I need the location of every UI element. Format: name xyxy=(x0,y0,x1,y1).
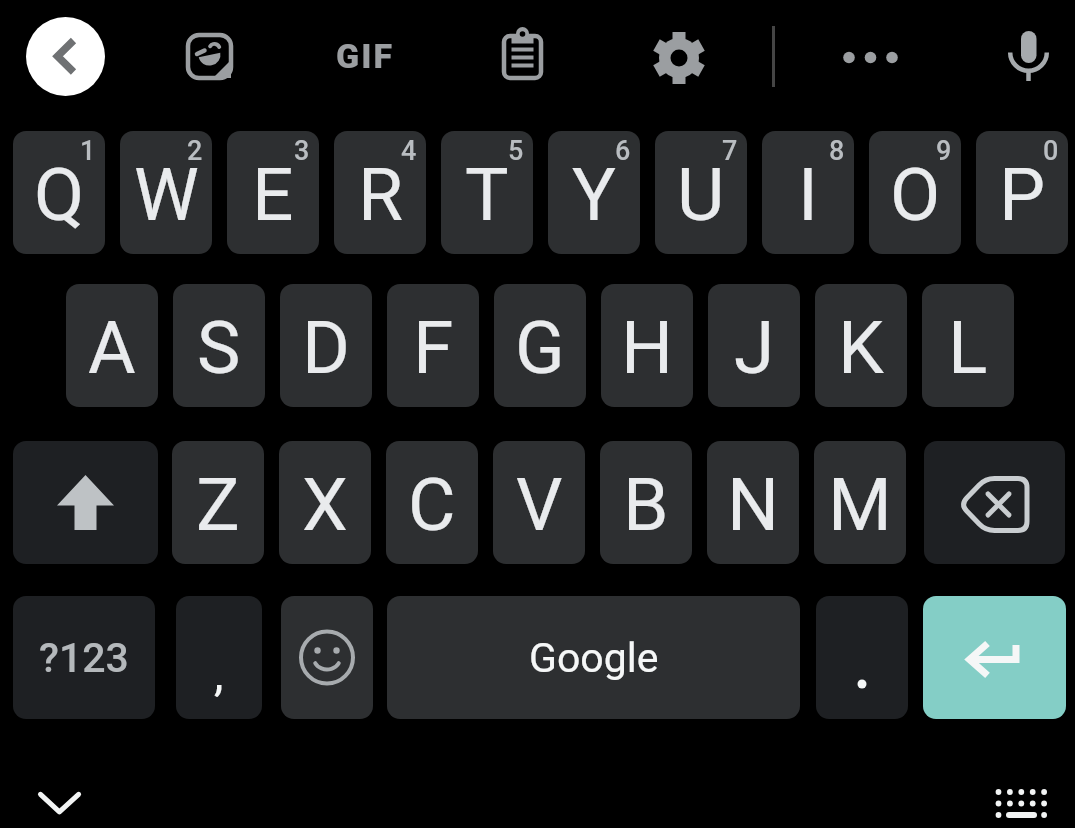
button[interactable] xyxy=(653,32,705,84)
button[interactable]: N xyxy=(707,441,799,564)
button[interactable]: L xyxy=(922,284,1014,407)
staticText: H xyxy=(621,305,674,391)
button[interactable]: , xyxy=(176,596,262,719)
staticText: 9 xyxy=(936,135,952,167)
button[interactable]: Google xyxy=(387,596,800,719)
staticText: 1 xyxy=(80,135,96,167)
button[interactable]: V xyxy=(493,441,585,564)
staticText: T xyxy=(465,152,509,238)
button[interactable] xyxy=(836,42,906,73)
staticText: A xyxy=(88,305,136,391)
staticText: I xyxy=(798,152,818,238)
button[interactable]: B xyxy=(600,441,692,564)
button[interactable]: U xyxy=(655,131,747,254)
staticText: P xyxy=(999,152,1046,238)
staticText: 6 xyxy=(615,135,631,167)
staticText: E xyxy=(252,152,294,238)
staticText: U xyxy=(677,152,725,238)
staticText: M xyxy=(828,462,892,548)
button[interactable]: P xyxy=(976,131,1068,254)
button[interactable] xyxy=(924,441,1065,564)
button[interactable]: D xyxy=(280,284,372,407)
button[interactable]: H xyxy=(601,284,693,407)
staticText: K xyxy=(838,305,884,391)
staticText: 7 xyxy=(722,135,738,167)
staticText: Google xyxy=(529,634,659,682)
button[interactable] xyxy=(1002,24,1055,86)
button[interactable]: S xyxy=(173,284,265,407)
button[interactable]: I xyxy=(762,131,854,254)
staticText: R xyxy=(358,152,403,238)
staticText: W xyxy=(134,152,199,238)
button[interactable]: C xyxy=(386,441,478,564)
button[interactable] xyxy=(13,441,158,564)
button[interactable] xyxy=(26,17,105,96)
button[interactable]: GIF xyxy=(330,36,400,76)
staticText: 8 xyxy=(829,135,845,167)
button[interactable] xyxy=(496,24,548,84)
staticText: , xyxy=(214,645,224,701)
staticText: C xyxy=(408,462,456,548)
button[interactable] xyxy=(988,780,1056,828)
staticText: Z xyxy=(196,462,240,548)
button[interactable] xyxy=(923,596,1066,719)
staticText: 3 xyxy=(294,135,310,167)
staticText: 2 xyxy=(187,135,203,167)
button[interactable] xyxy=(28,780,92,828)
staticText: Q xyxy=(34,152,85,238)
button[interactable]: Q xyxy=(13,131,105,254)
staticText: Y xyxy=(572,152,616,238)
staticText: 5 xyxy=(508,135,524,167)
staticText: GIF xyxy=(336,36,395,76)
staticText: F xyxy=(413,305,454,391)
button[interactable]: R xyxy=(334,131,426,254)
staticText: J xyxy=(734,305,775,391)
button[interactable]: G xyxy=(494,284,586,407)
staticText: D xyxy=(302,305,350,391)
staticText: G xyxy=(515,305,565,391)
staticText: 0 xyxy=(1043,135,1059,167)
button[interactable]: X xyxy=(279,441,371,564)
staticText: B xyxy=(623,462,669,548)
staticText: 4 xyxy=(401,135,417,167)
button[interactable]: Z xyxy=(172,441,264,564)
button[interactable]: T xyxy=(441,131,533,254)
button[interactable]: E xyxy=(227,131,319,254)
staticText: ?123 xyxy=(39,634,129,682)
staticText: V xyxy=(516,462,563,548)
button[interactable]: ?123 xyxy=(13,596,155,719)
button[interactable] xyxy=(281,596,373,719)
button[interactable] xyxy=(186,33,233,80)
staticText: S xyxy=(197,305,241,391)
staticText: N xyxy=(727,462,780,548)
button[interactable]: W xyxy=(120,131,212,254)
staticText: O xyxy=(890,152,941,238)
button[interactable]: A xyxy=(66,284,158,407)
button[interactable]: K xyxy=(815,284,907,407)
button[interactable] xyxy=(816,596,908,719)
button[interactable]: Y xyxy=(548,131,640,254)
button[interactable]: M xyxy=(814,441,906,564)
button[interactable]: J xyxy=(708,284,800,407)
staticText: L xyxy=(948,305,988,391)
button[interactable]: O xyxy=(869,131,961,254)
button[interactable]: F xyxy=(387,284,479,407)
staticText: X xyxy=(302,462,348,548)
